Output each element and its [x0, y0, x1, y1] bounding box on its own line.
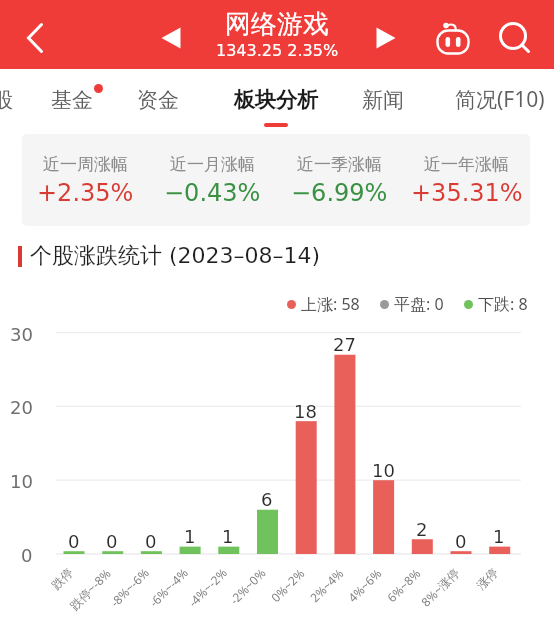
- staticText: 近一季涨幅: [297, 154, 382, 175]
- staticText: 0%~2%: [267, 565, 308, 605]
- staticText: -6%~-4%: [145, 564, 191, 610]
- staticText: +35.31%: [411, 179, 523, 207]
- button[interactable]: 近一季涨幅: [276, 154, 403, 207]
- button[interactable]: 近一年涨幅: [403, 154, 530, 207]
- staticText: 18: [294, 401, 317, 422]
- staticText: 1343.25 2.35%: [216, 41, 339, 60]
- staticText: 平盘: 0: [394, 293, 444, 315]
- staticText: +2.35%: [37, 179, 134, 207]
- staticText: 近一周涨幅: [43, 154, 128, 175]
- staticText: 30: [10, 324, 33, 345]
- staticText: 1: [184, 526, 196, 547]
- staticText: 简况(F10): [455, 85, 545, 114]
- staticText: 2: [416, 519, 428, 540]
- button[interactable]: 板块分析: [234, 87, 318, 113]
- button[interactable]: Next sector: [363, 15, 409, 61]
- button[interactable]: 近一月涨幅: [149, 154, 276, 207]
- button[interactable]: Back: [11, 15, 57, 61]
- staticText: 股: [0, 87, 13, 113]
- staticText: 近一年涨幅: [424, 154, 509, 175]
- staticText: 8%~涨停: [417, 564, 463, 610]
- staticText: 0: [106, 531, 118, 552]
- staticText: 2%~4%: [306, 565, 347, 605]
- staticText: 0: [21, 545, 33, 566]
- staticText: 0: [455, 531, 467, 552]
- staticText: 10: [10, 471, 33, 492]
- button[interactable]: Search: [490, 14, 536, 60]
- staticText: 20: [10, 397, 33, 418]
- button[interactable]: 股: [0, 87, 13, 113]
- staticText: 下跌: 8: [478, 293, 528, 315]
- staticText: 近一月涨幅: [170, 154, 255, 175]
- button[interactable]: 近一周涨幅: [22, 154, 149, 207]
- button[interactable]: 下跌: 8: [464, 293, 528, 315]
- button[interactable]: 基金: [51, 87, 93, 113]
- staticText: 跌停: [48, 565, 76, 592]
- staticText: 板块分析: [234, 87, 318, 113]
- staticText: 4%~6%: [344, 565, 385, 605]
- staticText: 10: [372, 460, 395, 481]
- staticText: 基金: [51, 87, 93, 113]
- staticText: 跌停~-8%: [66, 565, 114, 613]
- button[interactable]: 新闻: [362, 87, 404, 113]
- staticText: -8%~-6%: [106, 564, 152, 610]
- staticText: 1: [222, 526, 234, 547]
- button[interactable]: 上涨: 58: [287, 293, 360, 315]
- staticText: 6: [261, 489, 273, 510]
- button[interactable]: 平盘: 0: [380, 293, 444, 315]
- staticText: -2%~0%: [226, 564, 269, 607]
- staticText: −6.99%: [291, 179, 388, 207]
- staticText: 涨停: [473, 565, 501, 592]
- staticText: 网络游戏: [225, 8, 329, 41]
- button[interactable]: AI assistant: [430, 15, 476, 61]
- staticText: −0.43%: [164, 179, 261, 207]
- staticText: 1: [493, 526, 505, 547]
- button[interactable]: Previous sector: [148, 15, 194, 61]
- staticText: 资金: [137, 87, 179, 113]
- staticText: 27: [333, 334, 356, 355]
- staticText: 0: [145, 531, 157, 552]
- button[interactable]: 资金: [137, 87, 179, 113]
- staticText: 0: [68, 531, 80, 552]
- staticText: -4%~-2%: [184, 564, 230, 610]
- staticText: 6%~8%: [383, 565, 424, 605]
- staticText: 个股涨跌统计 (2023–08–14): [30, 242, 321, 270]
- staticText: 新闻: [362, 87, 404, 113]
- staticText: 上涨: 58: [301, 293, 360, 315]
- button[interactable]: 简况(F10): [455, 85, 545, 114]
